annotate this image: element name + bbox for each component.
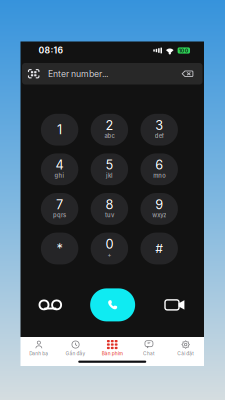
staticText: 08:16 <box>38 45 63 56</box>
button[interactable]: Bàn phím <box>94 340 131 356</box>
staticText: jkl <box>106 172 113 179</box>
staticText: pqrs <box>53 212 66 219</box>
button[interactable]: Delete <box>182 63 202 84</box>
staticText: + <box>107 251 111 258</box>
button[interactable]: 5 <box>91 153 128 185</box>
button[interactable]: 9 <box>140 193 178 225</box>
button[interactable]: 8 <box>91 193 128 225</box>
button[interactable]: 3 <box>140 114 178 146</box>
button[interactable]: 1 <box>41 114 78 146</box>
staticText: abc <box>104 132 114 139</box>
button[interactable]: 4 <box>41 153 78 185</box>
button[interactable]: Chat <box>131 340 167 356</box>
button[interactable]: 0 <box>91 233 128 264</box>
staticText: * <box>57 241 63 256</box>
staticText: Danh bạ <box>29 351 48 356</box>
staticText: 3 <box>155 117 163 133</box>
button[interactable]: # <box>140 233 178 264</box>
button[interactable]: 6 <box>140 153 178 185</box>
button[interactable]: Voicemail <box>24 288 77 322</box>
staticText: 100 <box>179 47 189 54</box>
staticText: 2 <box>105 117 113 133</box>
button[interactable]: Cài đặt <box>167 340 204 356</box>
staticText: Chat <box>143 351 155 356</box>
staticText: Bàn phím <box>102 351 123 356</box>
button[interactable]: * <box>41 233 78 264</box>
staticText: # <box>155 241 163 256</box>
staticText: Enter number... <box>48 68 108 79</box>
staticText: 4 <box>56 157 64 173</box>
staticText: 5 <box>105 157 113 173</box>
staticText: 1 <box>57 122 62 137</box>
staticText: Gần đây <box>66 351 86 356</box>
staticText: wxyz <box>152 212 166 219</box>
button[interactable]: Gần đây <box>57 340 94 356</box>
button[interactable]: Video call <box>148 288 201 322</box>
staticText: 9 <box>155 197 163 212</box>
button[interactable]: 2 <box>91 114 128 146</box>
button[interactable]: Danh bạ <box>20 340 57 356</box>
button[interactable]: 7 <box>41 193 78 225</box>
staticText: 8 <box>105 197 113 212</box>
staticText: mno <box>153 172 165 179</box>
staticText: tuv <box>105 212 114 219</box>
staticText: 7 <box>56 197 63 212</box>
button[interactable]: Call <box>90 288 135 322</box>
staticText: 6 <box>155 157 163 173</box>
staticText: ghi <box>55 172 65 179</box>
button[interactable]: Scan a number <box>22 63 48 84</box>
staticText: def <box>155 132 164 139</box>
staticText: Cài đặt <box>177 351 194 356</box>
staticText: 0 <box>105 236 113 252</box>
